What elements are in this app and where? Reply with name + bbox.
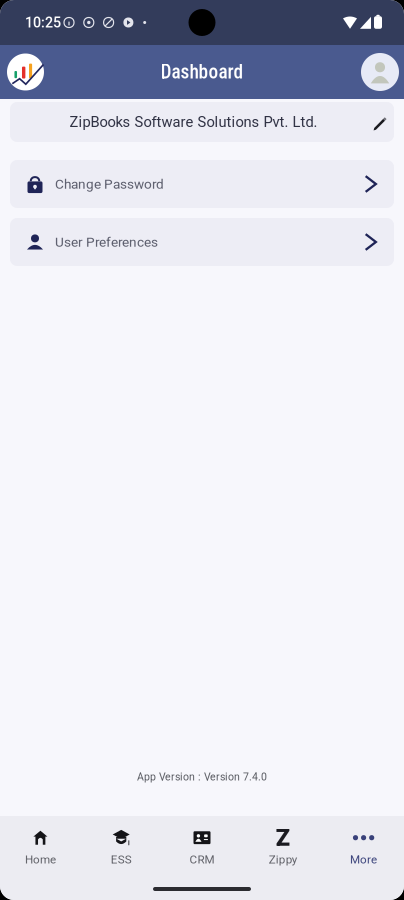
button[interactable]: ZipBooks Software Solutions Pvt. Ltd. — [10, 102, 394, 142]
staticText: ZipBooks Software Solutions Pvt. Ltd. — [69, 113, 317, 131]
button[interactable]: Home — [0, 816, 81, 872]
staticText: CRM — [189, 853, 214, 866]
button[interactable]: CRM — [162, 816, 242, 872]
button[interactable]: ESS — [81, 816, 162, 872]
staticText: More — [350, 853, 377, 866]
staticText: 10:25 — [25, 14, 61, 31]
button[interactable]: User Preferences — [10, 218, 394, 266]
staticText: Zippy — [269, 853, 297, 866]
staticText: Home — [25, 853, 56, 866]
button[interactable]: Profile — [361, 45, 404, 99]
button[interactable]: Z — [242, 816, 323, 872]
button[interactable]: App home — [0, 45, 44, 98]
staticText: User Preferences — [55, 234, 158, 250]
staticText: Z — [276, 824, 290, 851]
staticText: Dashboard — [160, 61, 243, 83]
button[interactable]: More — [323, 816, 404, 872]
staticText: ESS — [111, 853, 132, 866]
button[interactable]: Change Password — [10, 160, 394, 208]
staticText: App Version : Version 7.4.0 — [137, 771, 267, 783]
staticText: Change Password — [55, 176, 164, 192]
